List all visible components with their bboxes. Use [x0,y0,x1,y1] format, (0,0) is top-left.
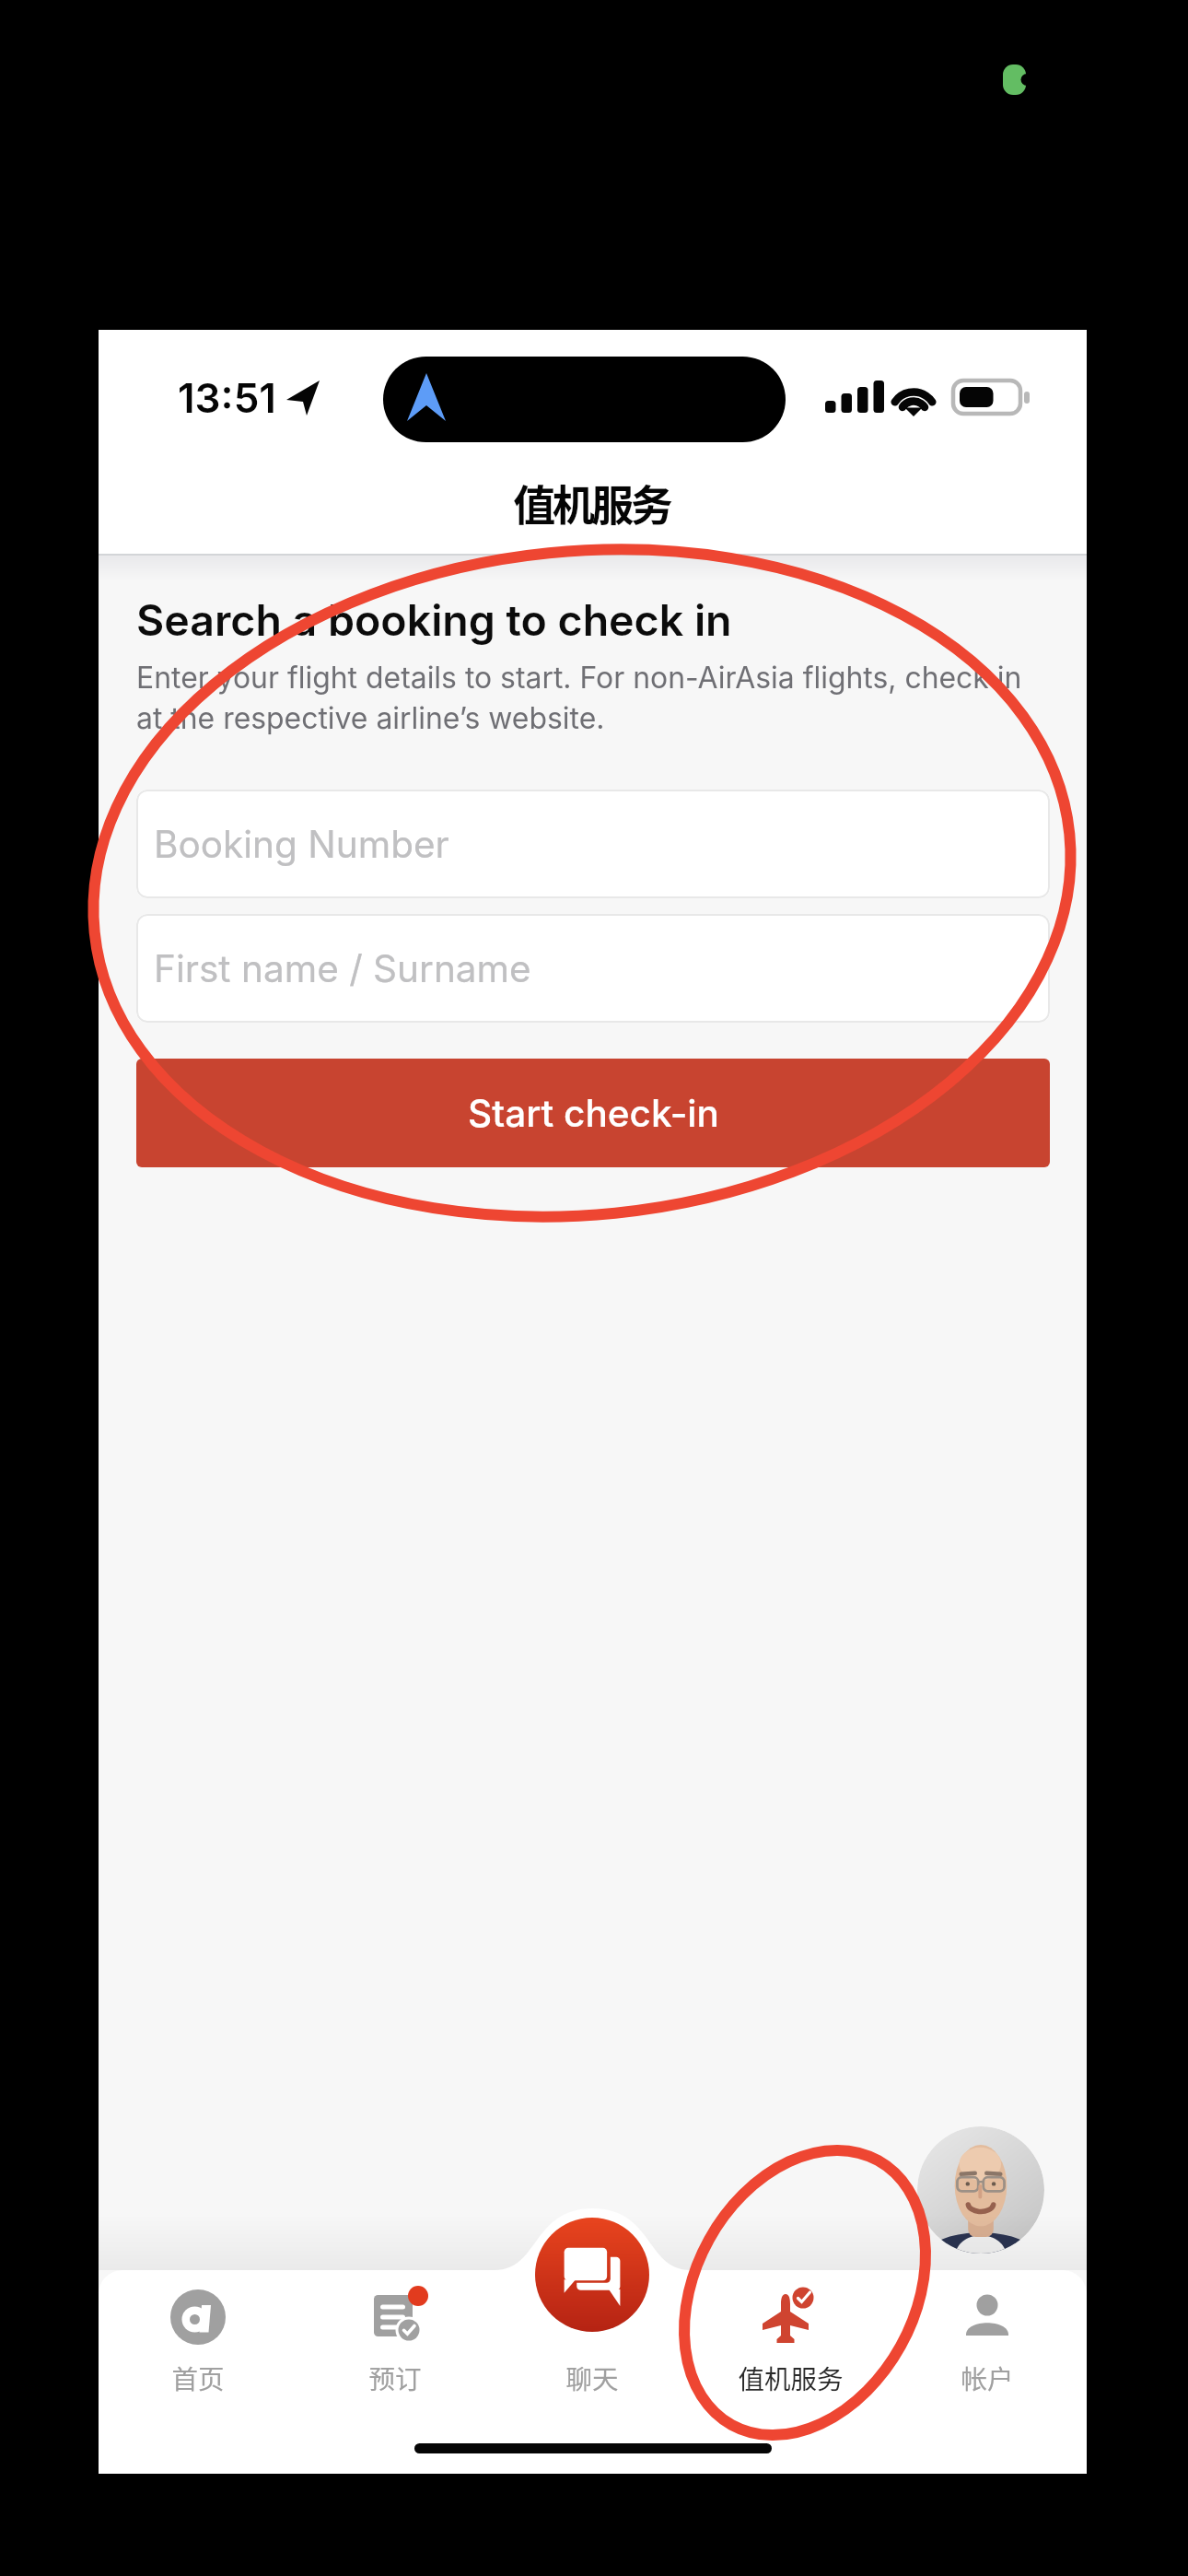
staticText: 值机服务 [738,2359,844,2396]
staticText: 聊天 [565,2359,619,2396]
button[interactable]: Chat [535,2218,649,2332]
button[interactable]: 聊天 [495,2281,689,2406]
staticText: 预订 [368,2359,422,2396]
button[interactable]: First name / Surname [136,914,1050,1023]
staticText: 13:51 [178,373,276,422]
button[interactable]: 预订 [298,2281,492,2406]
button[interactable]: 首页 [101,2281,295,2406]
staticText: 帐户 [961,2359,1014,2396]
staticText: Booking Number [154,822,449,867]
button[interactable]: 帐户 [891,2281,1084,2406]
staticText: Enter your flight details to start. For … [136,660,1022,736]
staticText: 首页 [171,2359,225,2396]
staticText: 值机服务 [515,472,671,533]
button[interactable]: Start check-in [136,1059,1050,1167]
staticText: Start check-in [468,1091,719,1136]
button[interactable]: 值机服务 [693,2281,887,2406]
button[interactable]: Profile [917,2126,1044,2254]
staticText: First name / Surname [154,946,531,991]
staticText: Search a booking to check in [136,594,732,646]
button[interactable]: Booking Number [136,790,1050,898]
